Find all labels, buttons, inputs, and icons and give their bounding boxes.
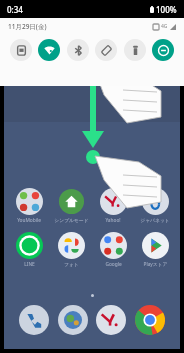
button[interactable]: Bluetooth: [67, 39, 89, 61]
staticText: LINE: [24, 261, 35, 268]
staticText: YouMobile: [17, 217, 41, 224]
button[interactable]: LINE: [9, 232, 49, 268]
staticText: 100%: [156, 4, 177, 15]
staticText: 11月29日(金): [8, 22, 47, 31]
button[interactable]: Yahoo!: [93, 188, 133, 224]
button[interactable]: Do not disturb: [152, 39, 174, 61]
button[interactable]: Flashlight: [124, 39, 146, 61]
staticText: 0:34: [67, 24, 118, 59]
button[interactable]: YouMobile: [9, 188, 49, 224]
button[interactable]: Auto rotate: [95, 39, 117, 61]
button[interactable]: App 8: [19, 305, 49, 335]
button[interactable]: シンプルモード: [51, 188, 91, 223]
staticText: ジャパネット: [140, 217, 170, 223]
staticText: フォト: [64, 261, 79, 267]
button[interactable]: フォト: [51, 232, 91, 267]
staticText: シンプルモード: [54, 217, 89, 223]
button[interactable]: Playストア: [135, 232, 175, 268]
button[interactable]: Screen lock: [10, 39, 32, 61]
staticText: Google: [105, 261, 122, 268]
button[interactable]: Google: [93, 232, 133, 268]
staticText: 通知はあ: [41, 40, 70, 49]
staticText: 4G: [161, 23, 168, 30]
staticText: Playストア: [143, 261, 168, 268]
staticText: 2019年11月29日: [70, 59, 116, 67]
button[interactable]: Wi-Fi: [38, 39, 60, 61]
button[interactable]: App 11: [135, 305, 165, 335]
button[interactable]: App 9: [58, 305, 88, 335]
button[interactable]: ジャパネット: [135, 188, 175, 223]
staticText: 午後: [26, 41, 38, 49]
staticText: 0:34: [7, 4, 23, 15]
button[interactable]: App 10: [96, 305, 126, 335]
staticText: Yahoo!: [105, 217, 121, 224]
